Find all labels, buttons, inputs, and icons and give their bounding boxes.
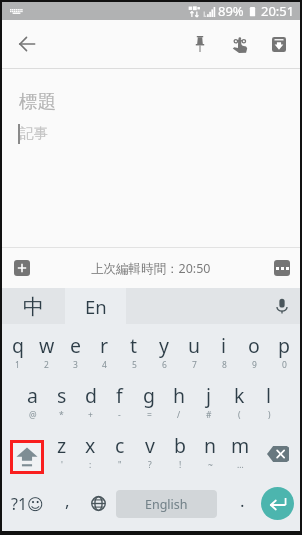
button[interactable]: w xyxy=(32,324,61,374)
staticText: + xyxy=(88,409,93,421)
staticText: x xyxy=(85,432,96,459)
staticText: … xyxy=(237,459,244,471)
button[interactable]: h xyxy=(164,374,194,424)
staticText: @ xyxy=(29,409,37,421)
button[interactable]: f xyxy=(105,374,134,424)
staticText: 9 xyxy=(252,359,257,371)
staticText: z xyxy=(57,432,67,459)
staticText: 4 xyxy=(102,359,107,371)
button[interactable]: Add xyxy=(14,260,30,276)
staticText: t xyxy=(130,332,138,359)
staticText: a xyxy=(27,382,38,409)
staticText: n xyxy=(204,432,217,459)
staticText: d xyxy=(85,382,97,409)
staticText: 8 xyxy=(222,359,227,371)
staticText: m xyxy=(231,432,250,459)
button[interactable]: a xyxy=(18,374,47,424)
staticText: # xyxy=(206,409,212,421)
button[interactable]: d xyxy=(76,374,105,424)
button[interactable]: v xyxy=(135,424,165,474)
staticText: " xyxy=(118,459,122,471)
staticText: / xyxy=(177,409,181,421)
staticText: 7 xyxy=(192,359,197,371)
staticText: u xyxy=(188,332,201,359)
button[interactable]: e xyxy=(61,324,90,374)
button[interactable]: p xyxy=(269,324,299,374)
staticText: ~ xyxy=(208,459,213,471)
button[interactable]: Back xyxy=(7,24,47,64)
staticText: 上次編輯時間：20:50 xyxy=(91,260,211,277)
staticText: 標題 xyxy=(19,90,56,113)
button[interactable]: More options xyxy=(274,260,290,276)
staticText: = xyxy=(147,409,152,421)
staticText: 記事 xyxy=(20,125,48,143)
button[interactable]: Backspace xyxy=(255,424,300,474)
staticText: ?1☺ xyxy=(11,493,44,515)
staticText: 20:51 xyxy=(261,2,295,20)
button[interactable]: En xyxy=(65,288,126,324)
staticText: En xyxy=(85,294,107,319)
staticText: w xyxy=(39,332,55,359)
button[interactable]: Shift xyxy=(2,424,47,474)
staticText: b xyxy=(174,432,186,459)
staticText: k xyxy=(234,382,245,409)
button[interactable]: t xyxy=(119,324,149,374)
staticText: q xyxy=(12,332,24,359)
button[interactable]: l xyxy=(254,374,284,424)
staticText: g xyxy=(143,382,155,409)
staticText: l xyxy=(266,382,272,409)
staticText: 2 xyxy=(44,359,49,371)
staticText: j xyxy=(206,382,212,409)
staticText: : xyxy=(89,459,92,471)
button[interactable]: Voice input xyxy=(264,288,300,324)
staticText: 6 xyxy=(162,359,167,371)
staticText: , xyxy=(65,489,70,512)
button[interactable]: . xyxy=(227,474,257,521)
button[interactable]: r xyxy=(90,324,119,374)
button[interactable]: Archive xyxy=(260,25,298,63)
button[interactable]: j xyxy=(194,374,224,424)
button[interactable]: ?1☺ xyxy=(2,474,52,521)
button[interactable]: Change language xyxy=(82,474,114,521)
button[interactable]: b xyxy=(165,424,195,474)
staticText: c xyxy=(115,432,125,459)
staticText: h xyxy=(173,382,186,409)
staticText: i xyxy=(221,332,227,359)
staticText: 中 xyxy=(23,294,44,320)
button[interactable]: n xyxy=(195,424,225,474)
staticText: o xyxy=(248,332,260,359)
button[interactable]: o xyxy=(239,324,269,374)
button[interactable]: Enter xyxy=(261,487,294,520)
button[interactable]: y xyxy=(149,324,179,374)
button[interactable]: English xyxy=(116,490,217,518)
staticText: - xyxy=(118,409,121,421)
staticText: English xyxy=(145,496,188,513)
staticText: s xyxy=(57,382,67,409)
staticText: 5 xyxy=(132,359,137,371)
button[interactable]: x xyxy=(76,424,105,474)
staticText: ' xyxy=(61,459,63,471)
staticText: p xyxy=(278,332,290,359)
staticText: 89% xyxy=(218,2,244,20)
button[interactable]: , xyxy=(52,474,82,521)
staticText: v xyxy=(145,432,155,459)
staticText: 1 xyxy=(15,359,20,371)
button[interactable]: z xyxy=(47,424,76,474)
button[interactable]: Reminder xyxy=(221,25,259,63)
button[interactable]: k xyxy=(224,374,254,424)
button[interactable]: 中 xyxy=(2,288,65,324)
staticText: y xyxy=(159,332,169,359)
button[interactable]: g xyxy=(134,374,164,424)
button[interactable]: i xyxy=(209,324,239,374)
staticText: ? xyxy=(148,459,152,471)
staticText: . xyxy=(240,489,245,512)
staticText: e xyxy=(70,332,81,359)
button[interactable]: q xyxy=(3,324,32,374)
button[interactable]: s xyxy=(47,374,76,424)
staticText: 0 xyxy=(282,359,287,371)
staticText: * xyxy=(59,409,64,421)
button[interactable]: Pin xyxy=(181,25,219,63)
button[interactable]: m xyxy=(225,424,255,474)
button[interactable]: c xyxy=(105,424,135,474)
button[interactable]: u xyxy=(179,324,209,374)
